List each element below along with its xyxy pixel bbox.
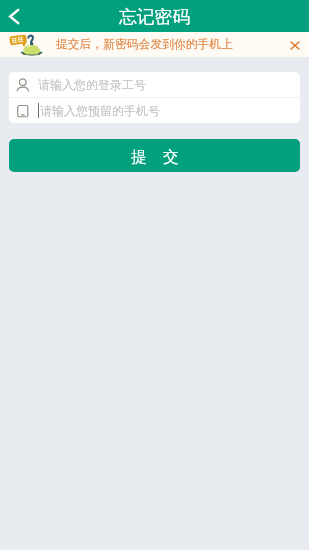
button[interactable]: 请输入您预留的手机号 bbox=[9, 98, 300, 123]
staticText: 请输入您预留的手机号 bbox=[40, 103, 160, 118]
button[interactable]: Back bbox=[0, 1, 30, 31]
button[interactable]: 提 bbox=[9, 139, 300, 172]
staticText: 提 bbox=[131, 147, 147, 167]
staticText: 请输入您的登录工号 bbox=[38, 77, 146, 92]
button[interactable]: Close bbox=[285, 35, 305, 55]
button[interactable]: 请输入您的登录工号 bbox=[9, 72, 300, 97]
staticText: 交 bbox=[163, 147, 179, 167]
staticText: 提交后，新密码会发到你的手机上 bbox=[56, 37, 233, 52]
staticText: 忘记密码 bbox=[119, 6, 191, 28]
